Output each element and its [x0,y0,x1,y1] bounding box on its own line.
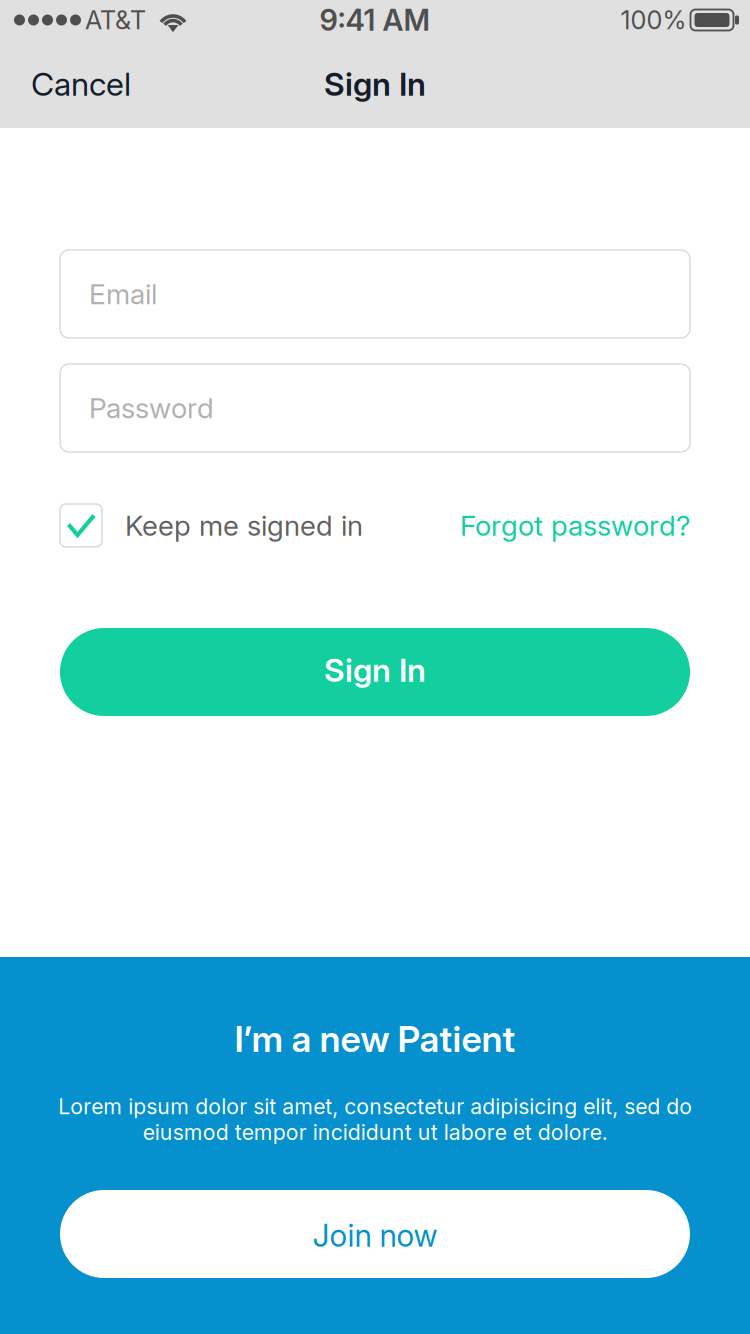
button[interactable]: Password [60,364,690,452]
staticText: Forgot password? [460,509,690,542]
button[interactable]: Forgot password? [460,509,690,542]
staticText: Sign In [324,65,426,103]
staticText: 100% [620,5,686,35]
staticText: AT&T [85,5,146,35]
staticText: Cancel [31,65,131,103]
button[interactable]: Sign In [60,628,690,716]
staticText: 9:41 AM [319,2,430,38]
staticText: Email [89,277,157,311]
staticText: I’m a new Patient [234,1017,515,1061]
button[interactable]: Join now [60,1190,690,1278]
staticText: Sign In [324,651,426,689]
staticText: Password [89,391,214,425]
button[interactable]: Email [60,250,690,338]
button[interactable]: Keep me signed in [60,504,363,547]
button[interactable]: Cancel [0,49,162,119]
staticText: Lorem ipsum dolor sit amet, consectetur … [58,1094,692,1145]
staticText: Join now [312,1217,437,1254]
staticText: Keep me signed in [125,509,363,542]
